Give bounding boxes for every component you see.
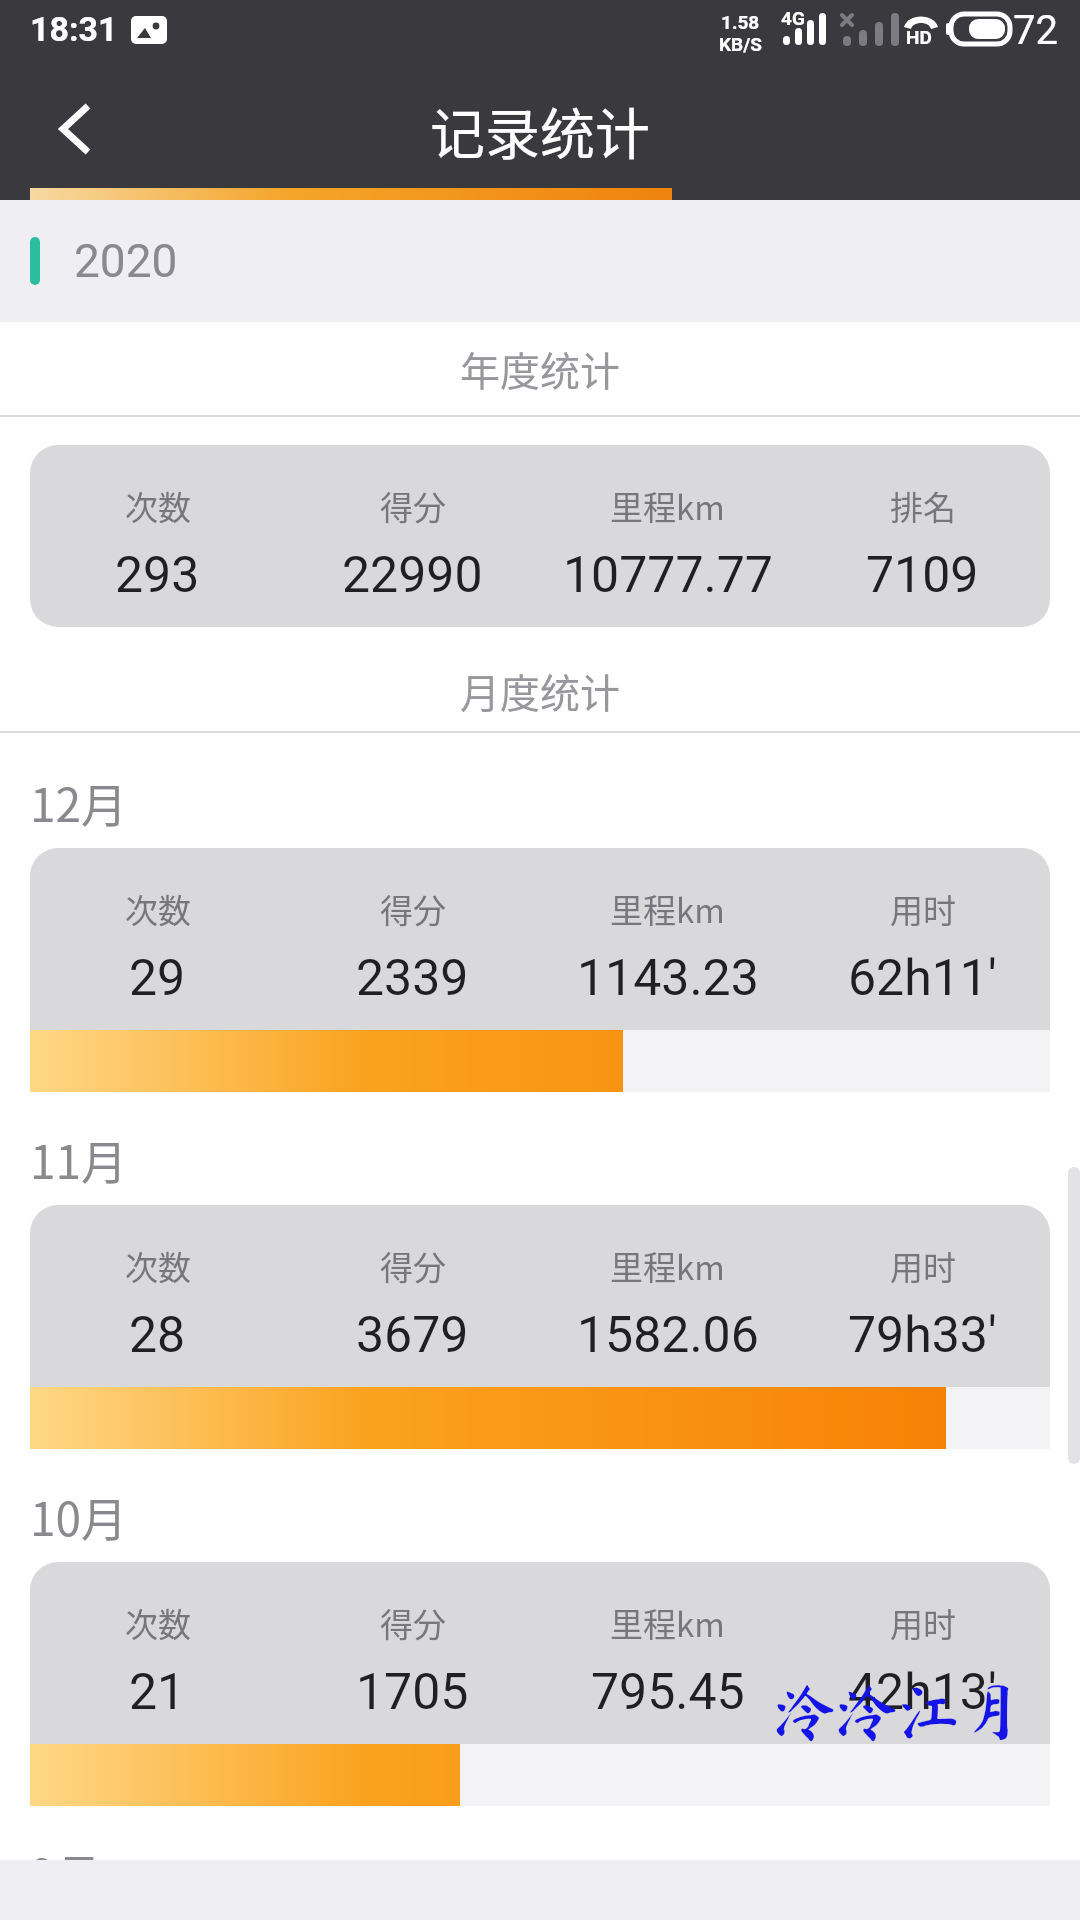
staticText: 62h11' xyxy=(848,949,997,1008)
staticText: 排名 xyxy=(890,482,956,530)
staticText: 里程km xyxy=(610,1242,725,1290)
staticText: 次数 xyxy=(125,1599,191,1647)
button[interactable]: 2020 xyxy=(0,200,1080,322)
staticText: 里程km xyxy=(610,1599,725,1647)
staticText: 次数 xyxy=(125,1242,191,1290)
staticText: 28 xyxy=(129,1306,186,1365)
button[interactable] xyxy=(40,90,112,170)
staticText: 用时 xyxy=(890,1599,956,1647)
staticText: 得分 xyxy=(380,1599,446,1647)
staticText: 用时 xyxy=(890,1242,956,1290)
staticText: 293 xyxy=(115,546,200,605)
staticText: 79h33' xyxy=(848,1306,997,1365)
staticText: 2339 xyxy=(356,949,469,1008)
staticText: 泠泠江月 xyxy=(774,1680,1023,1742)
staticText: 1.58 xyxy=(721,11,760,33)
staticText: 72 xyxy=(1013,7,1058,54)
staticText: 1143.23 xyxy=(577,949,759,1008)
staticText: 得分 xyxy=(380,482,446,530)
staticText: 用时 xyxy=(890,885,956,933)
staticText: 11月 xyxy=(30,1126,128,1190)
button[interactable]: 次数 xyxy=(30,848,1050,1092)
staticText: 12月 xyxy=(30,769,128,833)
staticText: 次数 xyxy=(125,482,191,530)
staticText: 3679 xyxy=(356,1306,469,1365)
staticText: 7109 xyxy=(866,546,979,605)
staticText: 10777.77 xyxy=(563,546,773,605)
staticText: 21 xyxy=(129,1663,186,1722)
staticText: KB/S xyxy=(719,33,762,55)
staticText: 18:31 xyxy=(30,9,118,49)
staticText: 42h13' xyxy=(848,1663,997,1722)
staticText: 里程km xyxy=(610,482,725,530)
staticText: 4G xyxy=(781,7,805,29)
button[interactable]: 次数 xyxy=(30,1205,1050,1449)
staticText: 年度统计 xyxy=(460,340,620,398)
staticText: 10月 xyxy=(30,1483,128,1547)
button[interactable]: 次数 xyxy=(30,1562,1050,1806)
staticText: 次数 xyxy=(125,885,191,933)
staticText: 里程km xyxy=(610,885,725,933)
staticText: 795.45 xyxy=(591,1663,745,1722)
staticText: 9月 xyxy=(30,1840,102,1904)
button[interactable]: 次数 xyxy=(30,445,1050,627)
staticText: 1705 xyxy=(356,1663,469,1722)
staticText: 29 xyxy=(129,949,186,1008)
staticText: 22990 xyxy=(342,546,483,605)
staticText: 1582.06 xyxy=(577,1306,759,1365)
staticText: HD xyxy=(906,26,932,48)
staticText: 得分 xyxy=(380,1242,446,1290)
staticText: 2020 xyxy=(74,234,178,288)
staticText: 月度统计 xyxy=(460,662,620,720)
staticText: 得分 xyxy=(380,885,446,933)
staticText: 记录统计 xyxy=(430,90,651,170)
